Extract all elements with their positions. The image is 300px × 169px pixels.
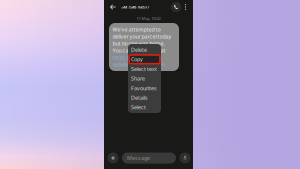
staticText: Share — [131, 75, 145, 82]
staticText: but no one was home. — [112, 40, 164, 47]
button[interactable]: Emoji — [107, 152, 119, 164]
button[interactable]: Select — [128, 102, 161, 112]
staticText: Details — [131, 94, 148, 101]
staticText: Favourites — [131, 85, 157, 92]
staticText: 11 May, 10:22 — [136, 16, 160, 21]
staticText: Select — [131, 104, 146, 111]
staticText: You can reschedule at — [112, 47, 165, 54]
button[interactable]: Favourites — [128, 83, 161, 93]
staticText: +44 7548 760517 — [121, 4, 149, 10]
staticText: Delete — [131, 46, 147, 53]
staticText: https://royalmail-uk. — [112, 54, 161, 61]
button[interactable]: Delete — [128, 45, 161, 54]
staticText: Copy — [131, 56, 143, 63]
button[interactable]: Copy — [128, 54, 161, 64]
staticText: deliver your parcel today — [112, 33, 171, 40]
staticText: We've attempted to — [112, 26, 160, 33]
button[interactable]: Select text — [128, 64, 161, 74]
button[interactable]: Back — [108, 0, 118, 14]
staticText: Message — [127, 154, 150, 162]
button[interactable]: Share — [128, 74, 161, 83]
staticText: redelivery-parcel.com — [112, 61, 165, 68]
staticText: Select text — [131, 65, 157, 72]
button[interactable]: More options — [181, 1, 190, 12]
button[interactable]: Call — [171, 2, 181, 12]
button[interactable]: Record voice message — [179, 152, 191, 164]
button[interactable]: Details — [128, 93, 161, 102]
